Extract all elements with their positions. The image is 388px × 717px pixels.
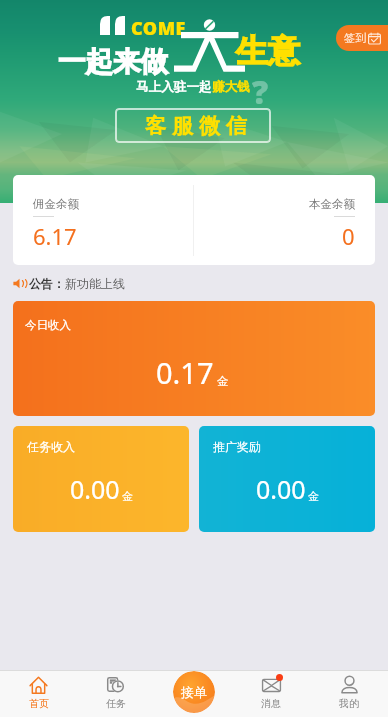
staticText: 接单 (181, 684, 207, 700)
button[interactable]: 首页 (0, 670, 77, 717)
staticText: 6.17 (33, 221, 77, 251)
staticText: 公告： (29, 276, 65, 291)
staticText: 0 (342, 221, 355, 251)
staticText: 0.17 (156, 353, 214, 392)
staticText: ? (252, 70, 269, 114)
staticText: 金 (217, 374, 229, 388)
staticText: 赚大钱 (212, 79, 250, 95)
button[interactable]: 佣金余额 (13, 175, 375, 265)
button[interactable]: 推广奖励 (199, 426, 375, 532)
staticText: 金 (308, 489, 319, 503)
staticText: 任务收入 (27, 439, 75, 454)
button[interactable]: 今日收入 (13, 301, 375, 416)
staticText: 马上入驻一起 (136, 79, 212, 95)
button[interactable]: 客服微信 (115, 108, 271, 143)
staticText: COME (131, 16, 186, 41)
button[interactable]: 签到 (336, 25, 388, 51)
staticText: 签到 (344, 31, 366, 45)
staticText: 新功能上线 (65, 276, 125, 291)
staticText: 0.00 (256, 472, 306, 506)
staticText: 佣金余额 (33, 197, 79, 211)
staticText: 消息 (261, 697, 281, 710)
staticText: 金 (122, 489, 133, 503)
staticText: 客服微信 (142, 113, 250, 139)
button[interactable]: 任务收入 (13, 426, 189, 532)
staticText: 0.00 (70, 472, 120, 506)
button[interactable]: 任务 (77, 670, 154, 717)
staticText: 推广奖励 (213, 439, 261, 454)
staticText: 一起来做 (58, 45, 168, 80)
staticText: 任务 (106, 697, 126, 710)
staticText: 生意 (236, 31, 300, 71)
button[interactable]: 公告： (13, 274, 375, 292)
button[interactable]: 我的 (310, 670, 388, 717)
staticText: 本金余额 (309, 197, 355, 211)
button[interactable]: 接单 (173, 671, 215, 713)
staticText: 今日收入 (25, 318, 71, 332)
staticText: 我的 (339, 697, 359, 710)
staticText: 首页 (29, 697, 49, 710)
button[interactable]: 消息 (232, 670, 310, 717)
